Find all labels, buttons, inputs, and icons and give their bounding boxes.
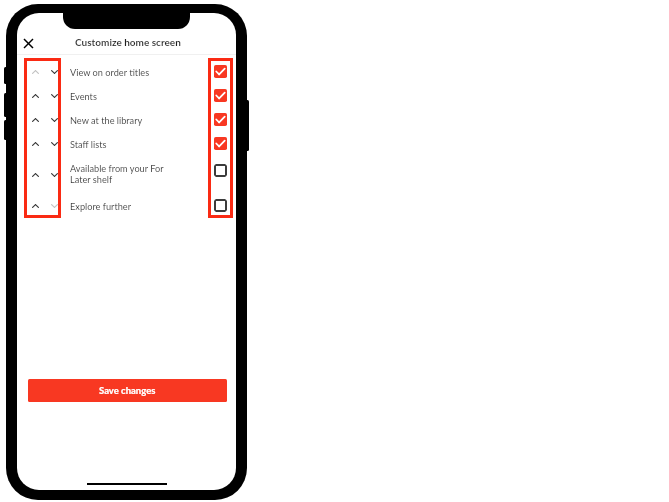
button[interactable]: Move down xyxy=(48,65,61,78)
button[interactable]: Explore further xyxy=(214,199,227,212)
staticText: Staff lists xyxy=(70,139,182,150)
button[interactable]: New at the library xyxy=(214,113,227,126)
staticText: Explore further xyxy=(70,201,182,212)
button[interactable]: Move up xyxy=(29,137,42,150)
staticText: Customize home screen xyxy=(75,36,181,48)
button[interactable]: Move down xyxy=(48,89,61,102)
button[interactable]: Available from your For Later shelf xyxy=(214,164,227,177)
button[interactable]: Move down xyxy=(48,168,61,181)
button[interactable]: Move up xyxy=(29,89,42,102)
button[interactable]: Events xyxy=(214,89,227,102)
button[interactable]: Move down xyxy=(48,137,61,150)
button[interactable]: Move down xyxy=(48,113,61,126)
staticText: View on order titles xyxy=(70,67,182,78)
button[interactable]: Move up xyxy=(29,65,42,78)
staticText: Save changes xyxy=(99,385,156,396)
staticText: Available from your For Later shelf xyxy=(70,163,182,185)
button[interactable]: View on order titles xyxy=(214,65,227,78)
button[interactable]: Staff lists xyxy=(214,137,227,150)
staticText: New at the library xyxy=(70,115,182,126)
button[interactable]: Move up xyxy=(29,168,42,181)
button[interactable]: Save changes xyxy=(28,379,227,402)
button[interactable]: Move down xyxy=(48,199,61,212)
button[interactable]: Move up xyxy=(29,199,42,212)
staticText: Events xyxy=(70,91,182,102)
button[interactable]: Move up xyxy=(29,113,42,126)
button[interactable]: Close xyxy=(17,32,39,54)
